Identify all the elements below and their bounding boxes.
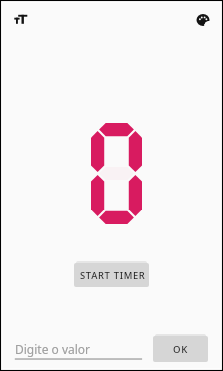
button[interactable]: Text size: [9, 9, 31, 31]
button[interactable]: OK: [153, 336, 208, 362]
staticText: Digite o valor: [15, 341, 91, 357]
button[interactable]: START TIMER: [74, 263, 149, 287]
button[interactable]: Change color: [192, 9, 214, 31]
staticText: START TIMER: [80, 269, 146, 282]
staticText: OK: [173, 343, 188, 356]
